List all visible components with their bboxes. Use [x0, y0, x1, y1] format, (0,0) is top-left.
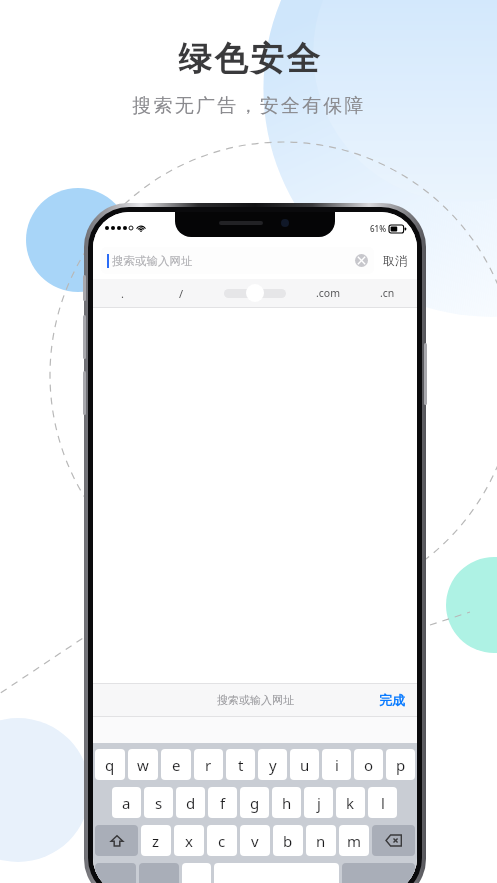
staticText: 完成: [379, 692, 405, 708]
staticText: 搜索或输入网址: [112, 254, 193, 268]
staticText: e: [172, 755, 181, 775]
button[interactable]: Numbers: [95, 863, 136, 883]
button[interactable]: s: [144, 787, 173, 818]
button[interactable]: t: [226, 749, 255, 780]
staticText: l: [381, 793, 385, 813]
button[interactable]: Clear: [355, 254, 368, 267]
button[interactable]: j: [304, 787, 333, 818]
staticText: i: [335, 755, 339, 775]
button[interactable]: 搜索或输入网址: [101, 247, 374, 274]
button[interactable]: l: [368, 787, 397, 818]
staticText: 取消: [383, 253, 407, 268]
staticText: a: [122, 793, 131, 813]
button[interactable]: /: [152, 279, 211, 307]
button[interactable]: p: [386, 749, 415, 780]
staticText: s: [155, 793, 163, 813]
button[interactable]: w: [128, 749, 158, 780]
button[interactable]: o: [354, 749, 383, 780]
staticText: t: [238, 755, 244, 775]
button[interactable]: z: [141, 825, 171, 856]
button[interactable]: 完成: [367, 686, 417, 714]
button[interactable]: u: [290, 749, 319, 780]
staticText: z: [152, 831, 160, 851]
staticText: q: [105, 755, 115, 775]
button[interactable]: r: [194, 749, 223, 780]
button[interactable]: q: [95, 749, 125, 780]
staticText: m: [347, 831, 362, 851]
staticText: .: [121, 286, 124, 301]
staticText: c: [218, 831, 226, 851]
button[interactable]: Backspace: [372, 825, 415, 856]
staticText: 绿色安全: [177, 38, 321, 80]
staticText: j: [317, 793, 321, 813]
staticText: r: [205, 755, 212, 775]
button[interactable]: .: [93, 279, 152, 307]
button[interactable]: a: [112, 787, 141, 818]
button[interactable]: n: [306, 825, 336, 856]
button[interactable]: i: [322, 749, 351, 780]
button[interactable]: v: [240, 825, 270, 856]
staticText: b: [283, 831, 293, 851]
staticText: 搜索或输入网址: [217, 693, 294, 707]
button[interactable]: 取消: [381, 249, 409, 272]
button[interactable]: Search: [342, 863, 415, 883]
button[interactable]: b: [273, 825, 303, 856]
staticText: u: [300, 755, 310, 775]
button[interactable]: x: [174, 825, 204, 856]
button[interactable]: .cn: [358, 279, 417, 307]
staticText: 61%: [370, 223, 386, 234]
staticText: f: [220, 793, 226, 813]
button[interactable]: Comma: [182, 863, 211, 883]
button[interactable]: k: [336, 787, 365, 818]
button[interactable]: Slider handle: [246, 284, 264, 302]
staticText: v: [251, 831, 259, 851]
staticText: d: [186, 793, 196, 813]
staticText: g: [250, 793, 260, 813]
staticText: n: [316, 831, 326, 851]
staticText: k: [346, 793, 355, 813]
staticText: x: [185, 831, 193, 851]
button[interactable]: Shift: [95, 825, 138, 856]
button[interactable]: g: [240, 787, 269, 818]
button[interactable]: m: [339, 825, 369, 856]
staticText: o: [364, 755, 374, 775]
staticText: .cn: [380, 286, 395, 300]
staticText: h: [282, 793, 292, 813]
staticText: p: [396, 755, 406, 775]
button[interactable]: c: [207, 825, 237, 856]
button[interactable]: f: [208, 787, 237, 818]
staticText: 搜索无广告，安全有保障: [132, 94, 366, 118]
button[interactable]: .com: [299, 279, 358, 307]
staticText: w: [137, 755, 149, 775]
button[interactable]: d: [176, 787, 205, 818]
staticText: .com: [316, 286, 341, 300]
button[interactable]: e: [161, 749, 191, 780]
button[interactable]: h: [272, 787, 301, 818]
button[interactable]: y: [258, 749, 287, 780]
staticText: /: [179, 286, 184, 301]
staticText: y: [269, 755, 277, 775]
